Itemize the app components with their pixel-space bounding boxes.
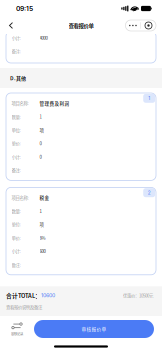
button[interactable]: 查看报价说明及备注	[6, 304, 42, 310]
staticText: 管理费及利润	[40, 100, 70, 106]
staticText: 0	[40, 154, 42, 160]
staticText: 4000	[40, 35, 48, 41]
staticText: 小计:	[12, 248, 21, 254]
staticText: 查看报价单	[68, 21, 93, 29]
staticText: 09:15	[16, 4, 33, 13]
staticText: 1	[40, 113, 42, 120]
staticText: 数量:	[12, 208, 21, 214]
staticText: 备注:	[12, 48, 21, 54]
staticText: 单位:	[12, 221, 21, 228]
staticText: 备注:	[12, 167, 21, 173]
staticText: 税金	[40, 194, 50, 201]
button[interactable]: 审核报价单	[34, 320, 154, 338]
staticText: 项目名称:	[12, 100, 29, 106]
staticText: 1	[40, 208, 42, 214]
staticText: 6%	[40, 235, 46, 241]
staticText: 数量:	[12, 113, 21, 120]
staticText: 项	[40, 221, 44, 228]
staticText: D.其他	[10, 74, 26, 82]
staticText: 0	[40, 140, 42, 147]
staticText: 单价:	[12, 140, 21, 147]
staticText: 项	[40, 127, 44, 133]
staticText: 10600	[41, 292, 55, 299]
staticText: 单价:	[12, 235, 21, 241]
staticText: 小计:	[12, 35, 21, 41]
staticText: 1	[148, 95, 150, 101]
staticText: 单位:	[12, 127, 21, 133]
staticText: 优惠价：10500元	[123, 292, 153, 299]
button[interactable]: Back	[0, 17, 22, 34]
staticText: 审核报价单	[81, 326, 106, 332]
staticText: 2	[148, 190, 151, 196]
button[interactable]: 审核记录	[0, 317, 34, 341]
staticText: 600	[40, 248, 46, 254]
staticText: 项目名称:	[12, 194, 29, 201]
button[interactable]: Close	[141, 20, 156, 31]
button[interactable]: More	[125, 20, 140, 31]
staticText: 合计TOTAL：	[6, 291, 41, 300]
staticText: 备注:	[12, 261, 21, 268]
staticText: 小计:	[12, 154, 21, 160]
staticText: 审核记录	[11, 331, 23, 336]
staticText: 查看报价说明及备注	[6, 304, 42, 310]
